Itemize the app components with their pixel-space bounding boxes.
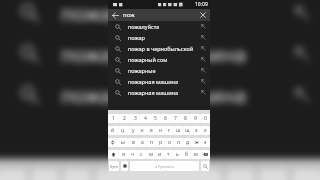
button[interactable]: ц [118,126,128,135]
staticText: т [167,151,170,158]
staticText: о [168,139,171,146]
button[interactable]: Shift [108,150,118,159]
button[interactable]: ф [108,138,118,147]
button[interactable]: ч [128,150,137,159]
staticText: пожарные [128,67,197,74]
button[interactable]: 1 [108,114,119,123]
staticText: 9 [194,115,197,122]
staticText: щ [185,127,190,134]
staticText: ч [131,151,134,158]
staticText: пожарные [61,0,281,27]
button[interactable]: р [156,138,165,147]
button[interactable]: пожарный сом [108,54,210,65]
button[interactable]: пожар [108,32,210,43]
button[interactable]: л [174,138,183,147]
button[interactable]: т [164,150,173,159]
button[interactable]: пожарные [108,65,210,76]
staticText: 5 [154,115,157,122]
staticText: пожар [128,34,197,41]
button[interactable]: в [128,138,138,147]
staticText: 10:09 [195,1,208,8]
button[interactable]: Sym [109,161,119,171]
button[interactable]: н [156,126,165,135]
button[interactable]: я [118,150,128,159]
staticText: ш [176,127,181,134]
button[interactable]: пожарная машина [108,76,210,87]
staticText: а [141,139,144,146]
staticText: ◂ Русский ▸ [155,164,175,169]
button[interactable]: з [192,126,201,135]
button[interactable]: 5 [150,114,160,123]
button[interactable]: б [182,150,191,159]
staticText: пожалуйста [128,23,197,30]
button[interactable]: Voice search [201,161,209,171]
button[interactable]: 3 [130,114,140,123]
button[interactable]: э [201,138,210,147]
staticText: ы [121,139,125,146]
staticText: пожарная машина мультик [128,89,197,96]
button[interactable]: 8 [180,114,190,123]
button[interactable]: Clear search [196,9,210,21]
button[interactable]: Backspace [200,150,210,159]
staticText: пожар в чернобыльской зоне [128,45,197,52]
staticText: 1 [112,115,115,122]
button[interactable]: с [137,150,146,159]
staticText: пожарный сом [128,56,197,63]
staticText: ь [176,151,179,158]
button[interactable]: 0 [200,114,210,123]
staticText: р [159,139,163,146]
button[interactable]: пожар в чернобыльской зоне [108,43,210,54]
staticText: 0 [204,115,207,122]
button[interactable]: 2 [119,114,130,123]
button[interactable]: у [128,126,138,135]
button[interactable]: ю [191,150,200,159]
staticText: й [111,127,115,134]
button[interactable]: Space [130,161,199,171]
button[interactable]: Back [108,9,123,21]
staticText: 8 [184,115,187,122]
staticText: з [195,127,198,134]
button[interactable]: е [147,126,156,135]
button[interactable]: ь [173,150,182,159]
button[interactable]: х [201,126,210,135]
button[interactable]: пожалуйста [108,21,210,32]
button[interactable]: к [138,126,147,135]
button[interactable]: о [165,138,174,147]
button[interactable]: й [108,126,118,135]
staticText: 4 [144,115,147,122]
staticText: э [204,139,207,146]
staticText: 3 [134,115,137,122]
staticText: ф [111,139,115,146]
staticText: ц [121,127,125,134]
staticText: 2 [123,115,126,122]
staticText: х [204,127,207,134]
button[interactable]: д [183,138,192,147]
staticText: г [168,127,171,134]
staticText: е [150,127,153,134]
button[interactable]: 6 [160,114,170,123]
button[interactable]: п [147,138,156,147]
button[interactable]: 9 [190,114,200,123]
button[interactable]: а [138,138,147,147]
staticText: пожарная машина [61,40,281,68]
button[interactable]: г [165,126,174,135]
button[interactable]: м [146,150,155,159]
staticText: я [122,151,125,158]
button[interactable]: пожарная машина мультик [108,87,210,98]
staticText: в [132,139,135,146]
button[interactable]: 4 [140,114,150,123]
staticText: 6 [164,115,167,122]
button[interactable]: ж [192,138,201,147]
button[interactable]: щ [183,126,192,135]
button[interactable]: Switch language [121,161,128,171]
button[interactable]: и [155,150,164,159]
button[interactable]: 7 [170,114,180,123]
staticText: пожарная машина мультик [61,81,281,109]
button[interactable]: ы [118,138,128,147]
button[interactable]: ш [174,126,183,135]
